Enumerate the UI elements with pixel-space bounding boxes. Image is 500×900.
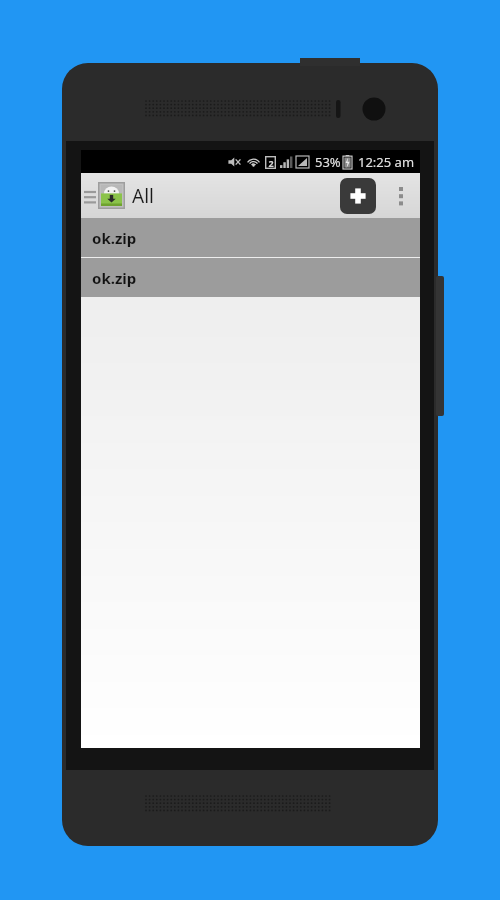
button[interactable]: Navigation drawer (81, 182, 158, 209)
staticText: All (132, 183, 154, 209)
staticText: 53% (315, 153, 341, 171)
button[interactable]: Add (340, 178, 376, 214)
staticText: 12:25 am (358, 153, 415, 171)
button[interactable]: ok.zip (81, 218, 420, 257)
other: Navigation drawer (84, 189, 96, 203)
staticText: ok.zip (92, 268, 137, 288)
staticText: ok.zip (92, 228, 137, 248)
button[interactable]: More options (388, 176, 414, 216)
button[interactable]: ok.zip (81, 258, 420, 297)
staticText: 2 (268, 157, 274, 169)
